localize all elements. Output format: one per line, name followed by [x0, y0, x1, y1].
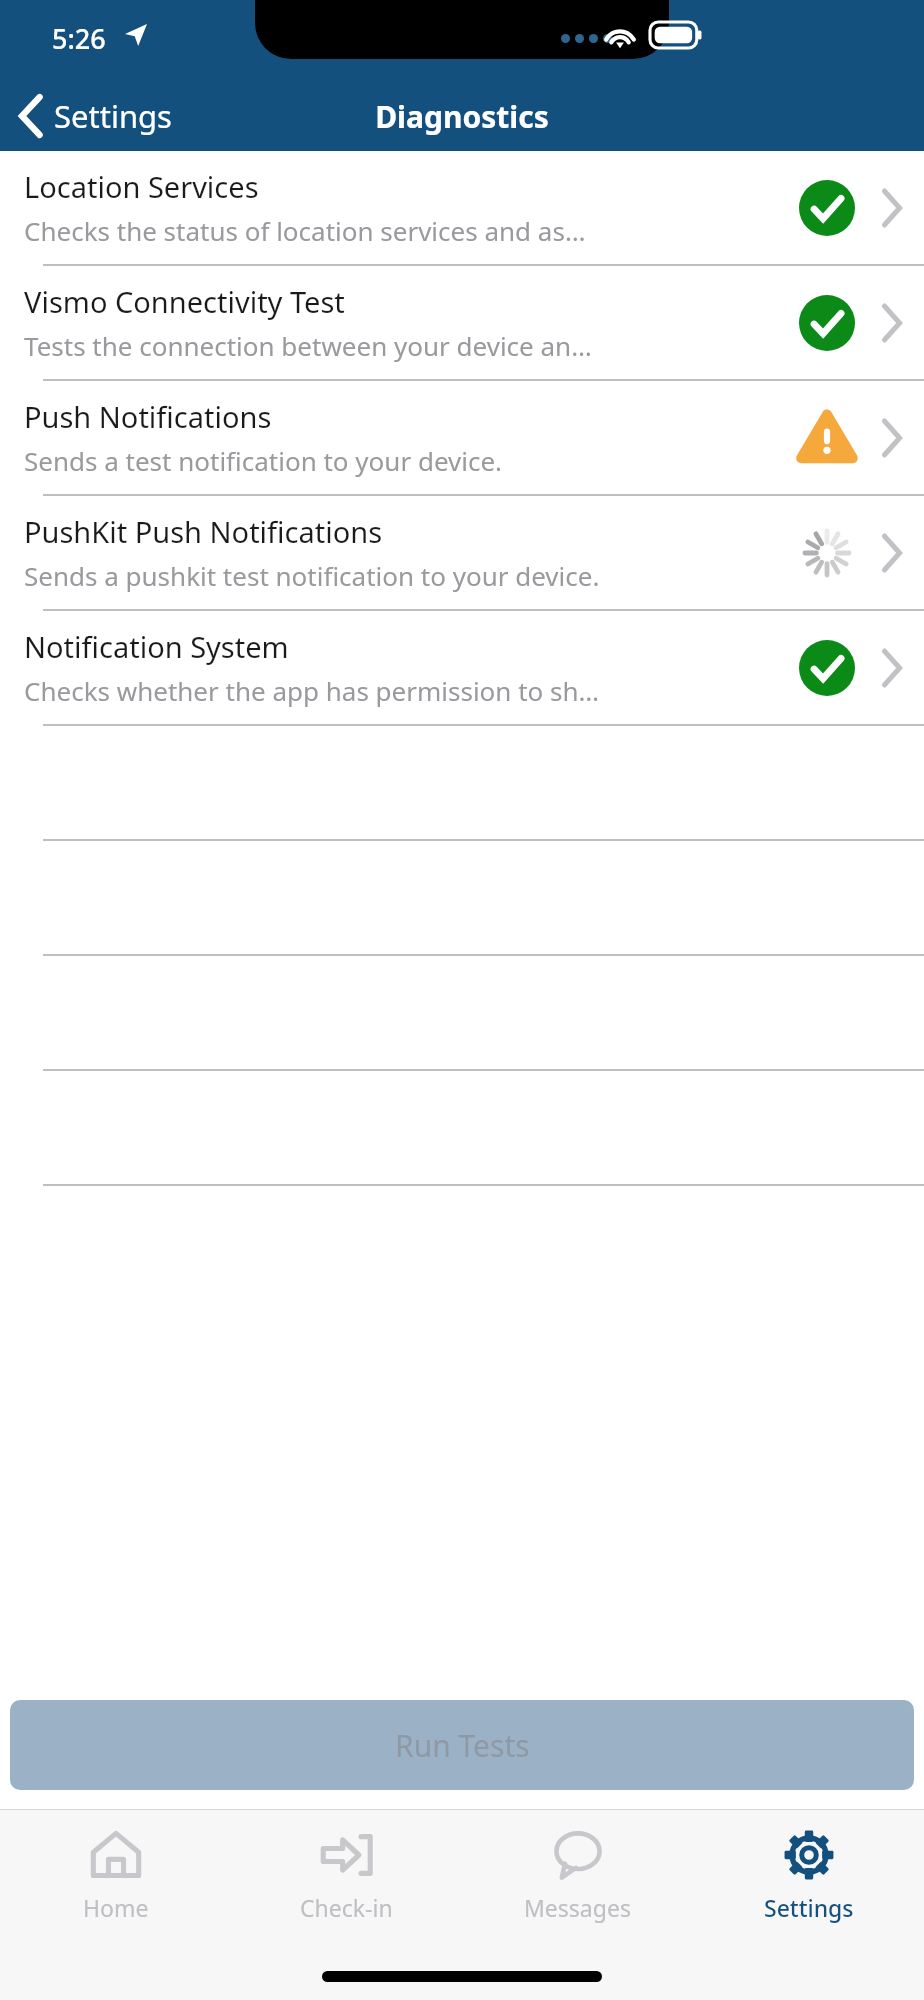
- staticText: Notification System: [24, 627, 289, 666]
- button[interactable]: Messages: [462, 1810, 693, 1923]
- staticText: Diagnostics: [375, 96, 549, 137]
- staticText: Run Tests: [395, 1725, 530, 1766]
- button[interactable]: Notification System: [0, 611, 924, 724]
- button[interactable]: Settings: [693, 1810, 924, 1923]
- other: Settings: [782, 1828, 836, 1882]
- other: Home: [89, 1828, 143, 1882]
- staticText: 5:26: [52, 20, 106, 57]
- button[interactable]: Check-in: [231, 1810, 462, 1923]
- button[interactable]: PushKit Push Notifications: [0, 496, 924, 609]
- button[interactable]: Home: [0, 1810, 231, 1923]
- staticText: Checks the status of location services a…: [24, 213, 586, 248]
- staticText: Sends a pushkit test notification to you…: [24, 558, 600, 593]
- staticText: Settings: [764, 1892, 854, 1923]
- button[interactable]: Vismo Connectivity Test: [0, 266, 924, 379]
- staticText: Home: [83, 1892, 149, 1923]
- button[interactable]: Settings: [0, 87, 188, 145]
- staticText: Push Notifications: [24, 397, 272, 436]
- staticText: PushKit Push Notifications: [24, 512, 383, 551]
- button[interactable]: Push Notifications: [0, 381, 924, 494]
- staticText: Checks whether the app has permission to…: [24, 673, 600, 708]
- staticText: Sends a test notification to your device…: [24, 443, 503, 478]
- staticText: Check-in: [300, 1892, 393, 1923]
- staticText: Tests the connection between your device…: [24, 328, 592, 363]
- button[interactable]: Run Tests: [10, 1700, 914, 1790]
- staticText: Location Services: [24, 167, 259, 206]
- button[interactable]: Location Services: [0, 151, 924, 264]
- staticText: Vismo Connectivity Test: [24, 282, 345, 321]
- staticText: Messages: [524, 1892, 631, 1923]
- other: Messages: [551, 1828, 605, 1882]
- staticText: Settings: [54, 95, 172, 137]
- other: Check-in: [320, 1828, 374, 1882]
